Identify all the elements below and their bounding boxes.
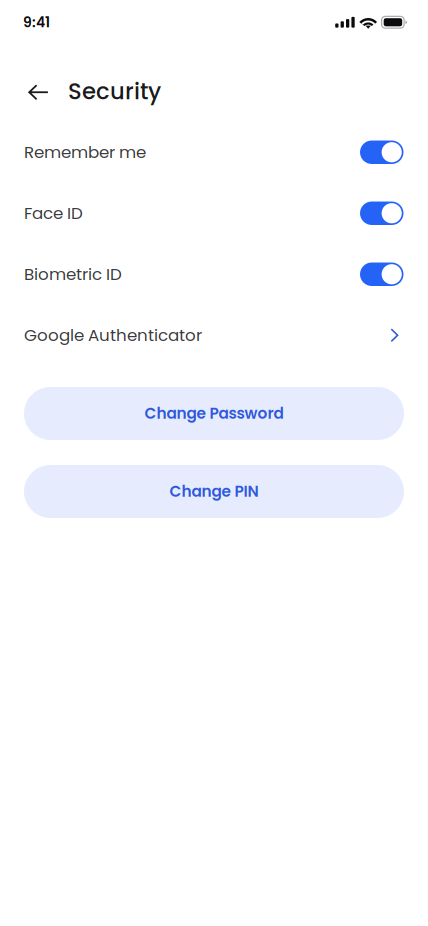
button[interactable]: Change PIN <box>24 465 404 518</box>
staticText: Security <box>68 75 161 107</box>
button[interactable]: Face ID <box>0 183 428 244</box>
staticText: Change PIN <box>169 481 258 502</box>
staticText: 9:41 <box>23 12 50 32</box>
staticText: Google Authenticator <box>24 324 202 347</box>
staticText: Remember me <box>24 141 146 164</box>
button[interactable]: Change Password <box>24 387 404 440</box>
button[interactable]: Back <box>20 74 55 110</box>
staticText: Biometric ID <box>24 263 122 286</box>
staticText: Face ID <box>24 202 83 225</box>
button[interactable]: Biometric ID <box>0 244 428 305</box>
staticText: Change Password <box>144 403 283 424</box>
button[interactable]: Google Authenticator <box>0 305 428 366</box>
button[interactable]: Remember me <box>0 122 428 183</box>
